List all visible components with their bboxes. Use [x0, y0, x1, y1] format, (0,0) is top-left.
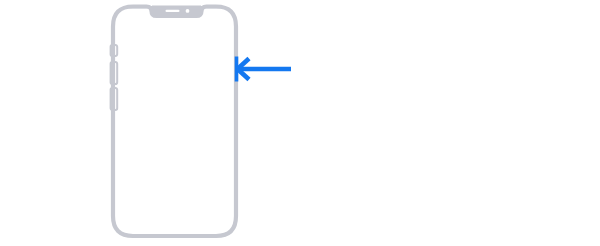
- other: iPhone side button diagram: [0, 0, 600, 246]
